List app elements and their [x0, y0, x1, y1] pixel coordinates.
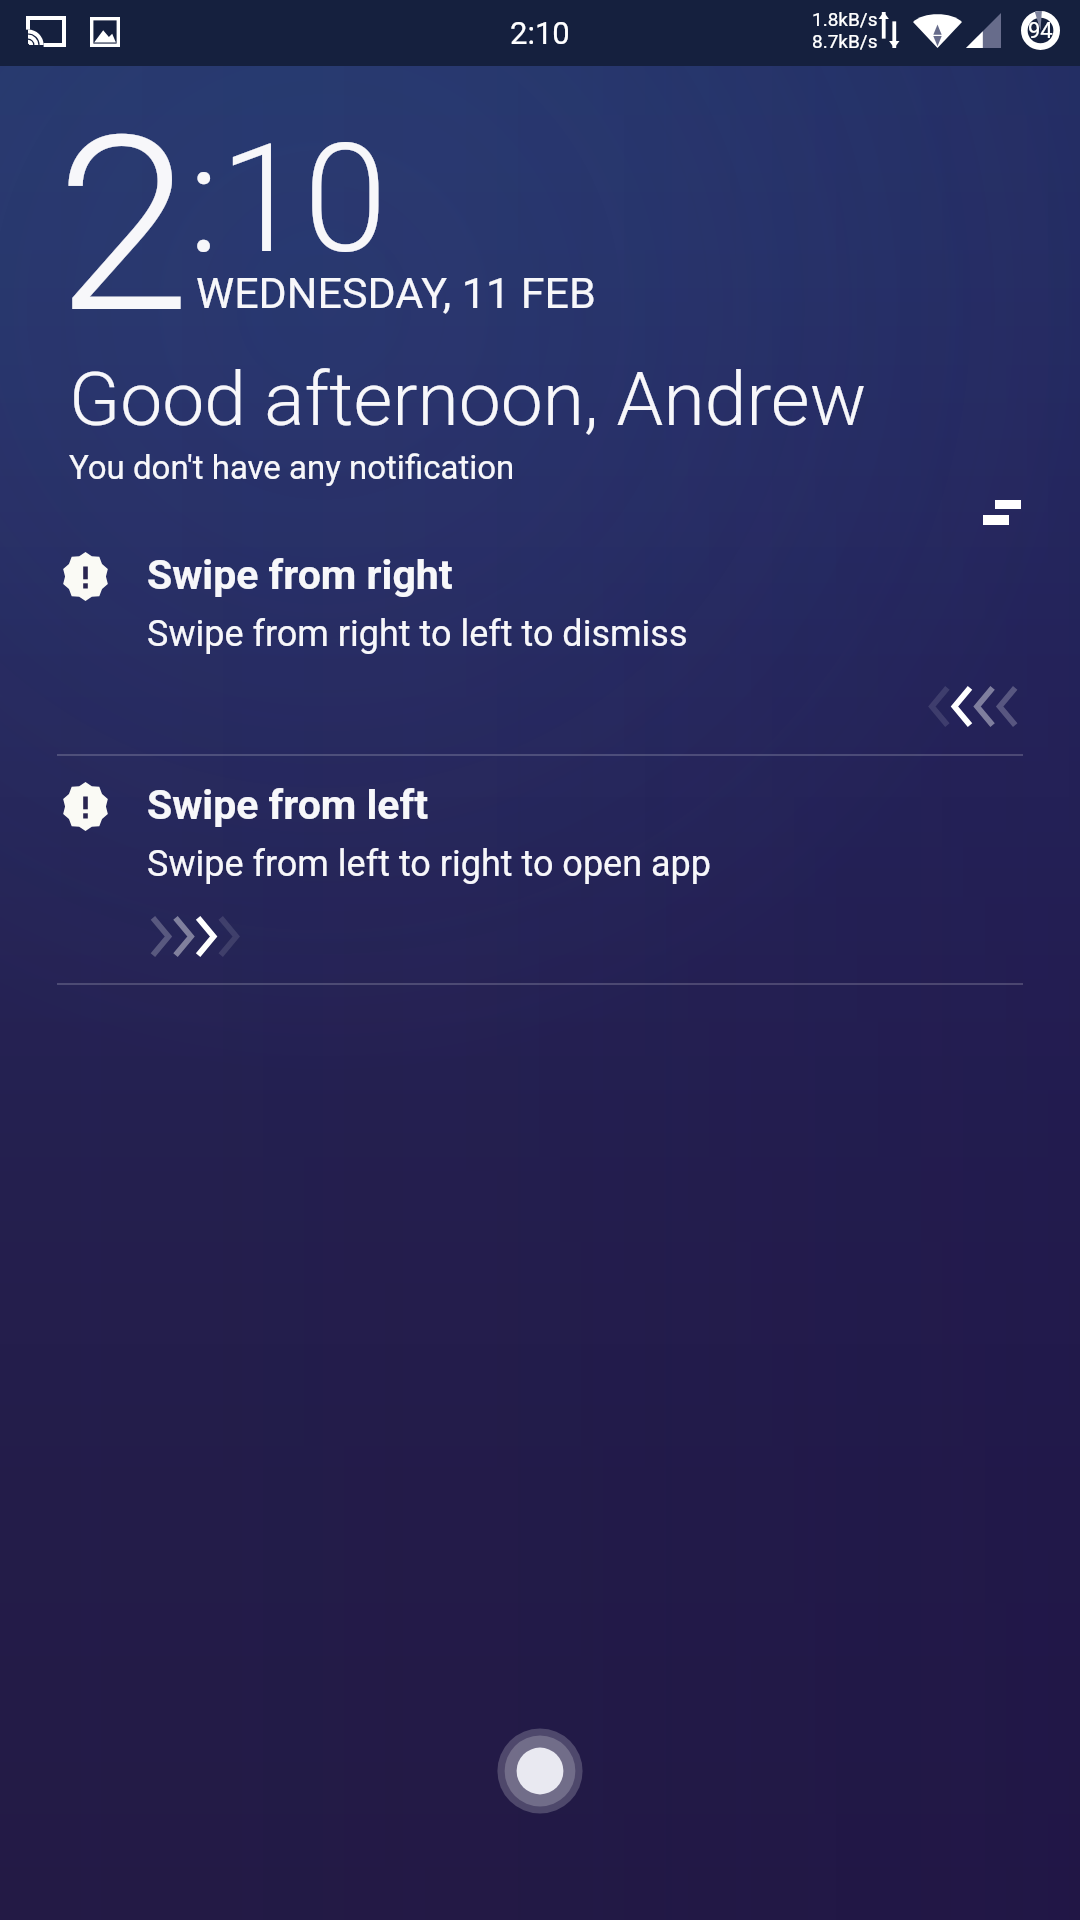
staticText: :10: [188, 111, 388, 288]
staticText: Good afternoon, Andrew: [69, 355, 867, 443]
staticText: Swipe from left: [147, 781, 429, 829]
staticText: 1.8kB/s: [812, 8, 878, 30]
staticText: 8.7kB/s: [812, 30, 878, 52]
button[interactable]: Swipe from right: [0, 543, 1080, 754]
staticText: Swipe from left to right to open app: [147, 843, 712, 885]
staticText: You don't have any notification: [69, 448, 515, 487]
staticText: Swipe from right: [147, 551, 453, 599]
staticText: 2: [56, 84, 191, 369]
button[interactable]: Unlock: [480, 1711, 600, 1831]
staticText: 94: [1028, 18, 1053, 44]
staticText: 2:10: [510, 15, 570, 51]
button[interactable]: Swipe from left: [0, 773, 1080, 983]
staticText: Swipe from right to left to dismiss: [147, 613, 688, 655]
staticText: WEDNESDAY, 11 FEB: [196, 268, 596, 318]
